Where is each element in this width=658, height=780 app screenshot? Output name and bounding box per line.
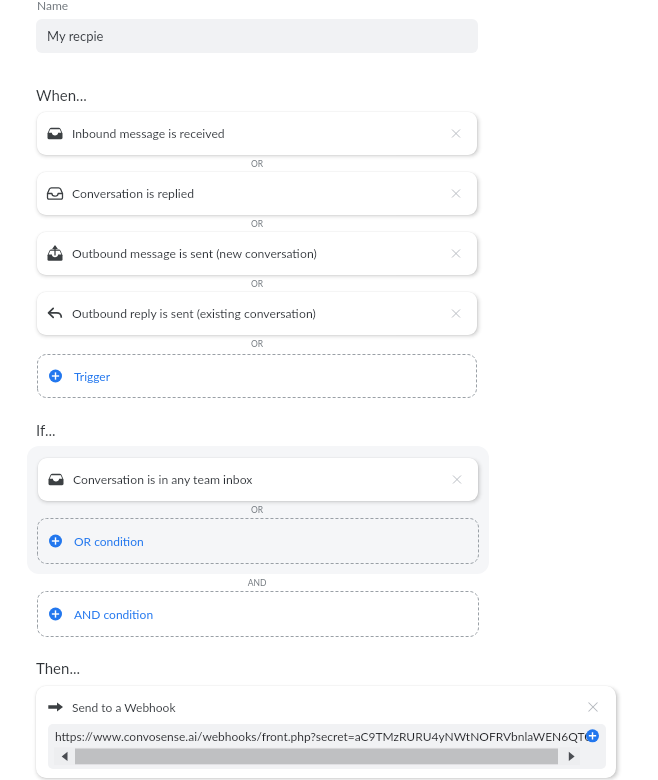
- button[interactable]: AND condition: [37, 591, 479, 637]
- button[interactable]: Conversation is in any team inbox: [38, 458, 478, 501]
- staticText: Conversation is replied: [72, 186, 194, 201]
- staticText: Outbound reply is sent (existing convers…: [72, 306, 316, 321]
- staticText: Send to a Webhook: [72, 700, 176, 714]
- button[interactable]: Outbound reply is sent (existing convers…: [37, 292, 477, 335]
- button[interactable]: Remove: [439, 292, 477, 335]
- staticText: Name: [37, 0, 69, 12]
- button[interactable]: Trigger: [37, 354, 477, 398]
- staticText: https://www.convosense.ai/webhooks/front…: [55, 729, 590, 743]
- staticText: If...: [36, 421, 56, 439]
- button[interactable]: Outbound message is sent (new conversati…: [37, 232, 477, 275]
- button[interactable]: Remove: [439, 232, 477, 275]
- button[interactable]: OR condition: [37, 518, 479, 564]
- staticText: My recpie: [47, 28, 104, 44]
- staticText: OR: [237, 505, 277, 515]
- button[interactable]: Conversation is replied: [37, 172, 477, 215]
- staticText: When...: [36, 86, 87, 104]
- button[interactable]: My recpie: [36, 19, 478, 53]
- staticText: OR: [237, 279, 277, 289]
- staticText: Inbound message is received: [72, 126, 225, 141]
- button[interactable]: Inbound message is received: [37, 112, 477, 155]
- staticText: AND: [237, 578, 277, 588]
- staticText: Outbound message is sent (new conversati…: [72, 246, 317, 261]
- staticText: OR: [237, 219, 277, 229]
- button[interactable]: Remove: [440, 458, 478, 501]
- staticText: OR: [237, 339, 277, 349]
- button[interactable]: Remove: [439, 172, 477, 215]
- staticText: Conversation is in any team inbox: [73, 472, 253, 487]
- button[interactable]: Remove: [576, 690, 610, 724]
- staticText: OR: [237, 159, 277, 169]
- staticText: AND condition: [74, 607, 154, 621]
- staticText: Trigger: [74, 369, 111, 383]
- button[interactable]: Remove: [439, 112, 477, 155]
- staticText: OR condition: [74, 534, 144, 548]
- staticText: Then...: [36, 659, 81, 677]
